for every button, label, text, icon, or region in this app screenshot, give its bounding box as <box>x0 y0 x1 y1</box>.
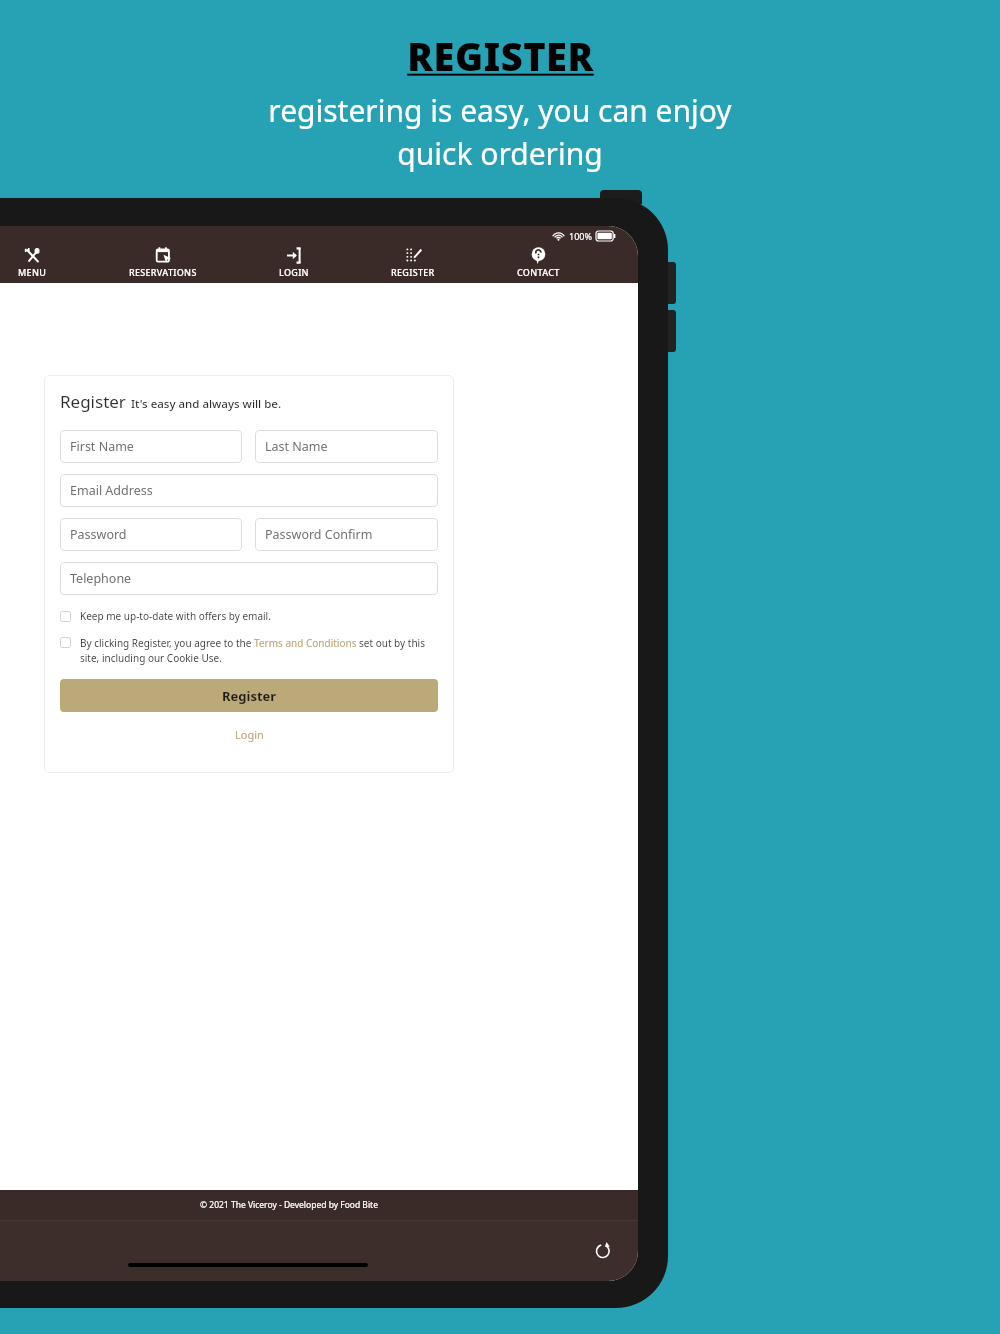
staticText: Last Name <box>265 438 328 455</box>
staticText: Keep me up-to-date with offers by email. <box>80 609 271 623</box>
staticText: First Name <box>70 438 134 455</box>
button[interactable]: Last Name <box>255 430 438 463</box>
staticText: By clicking Register, you agree to the T… <box>80 636 438 665</box>
button[interactable]: REGISTER <box>387 246 439 279</box>
staticText: Telephone <box>70 570 132 587</box>
button[interactable]: By clicking Register, you agree to the T… <box>60 636 438 665</box>
button[interactable]: MENU <box>14 246 51 279</box>
staticText: 100% <box>569 230 592 242</box>
staticText: MENU <box>18 266 47 278</box>
staticText: Email Address <box>70 482 153 499</box>
button[interactable]: Refresh <box>590 1238 616 1264</box>
button[interactable]: Password Confirm <box>255 518 438 551</box>
staticText: © 2021 The Viceroy - Developed by Food B… <box>200 1199 378 1211</box>
staticText: Register <box>60 390 126 413</box>
staticText: It's easy and always will be. <box>131 396 282 412</box>
button[interactable]: RESERVATIONS <box>125 246 201 279</box>
staticText: registering is easy, you can enjoy quick… <box>268 90 732 174</box>
staticText: Password Confirm <box>265 526 373 543</box>
button[interactable]: Register <box>60 679 438 712</box>
staticText: LOGIN <box>279 266 309 278</box>
button[interactable]: CONTACT <box>513 246 564 279</box>
staticText: REGISTER <box>407 30 594 82</box>
staticText: Register <box>222 687 277 705</box>
button[interactable]: LOGIN <box>275 246 313 279</box>
button[interactable]: Password <box>60 518 242 551</box>
staticText: CONTACT <box>517 266 560 278</box>
button[interactable]: Login <box>225 725 274 744</box>
button[interactable]: First Name <box>60 430 242 463</box>
staticText: Password <box>70 526 127 543</box>
button[interactable]: Email Address <box>60 474 438 507</box>
staticText: REGISTER <box>391 266 435 278</box>
button[interactable]: Telephone <box>60 562 438 595</box>
staticText: RESERVATIONS <box>129 266 197 278</box>
button[interactable]: Keep me up-to-date with offers by email. <box>60 609 438 623</box>
